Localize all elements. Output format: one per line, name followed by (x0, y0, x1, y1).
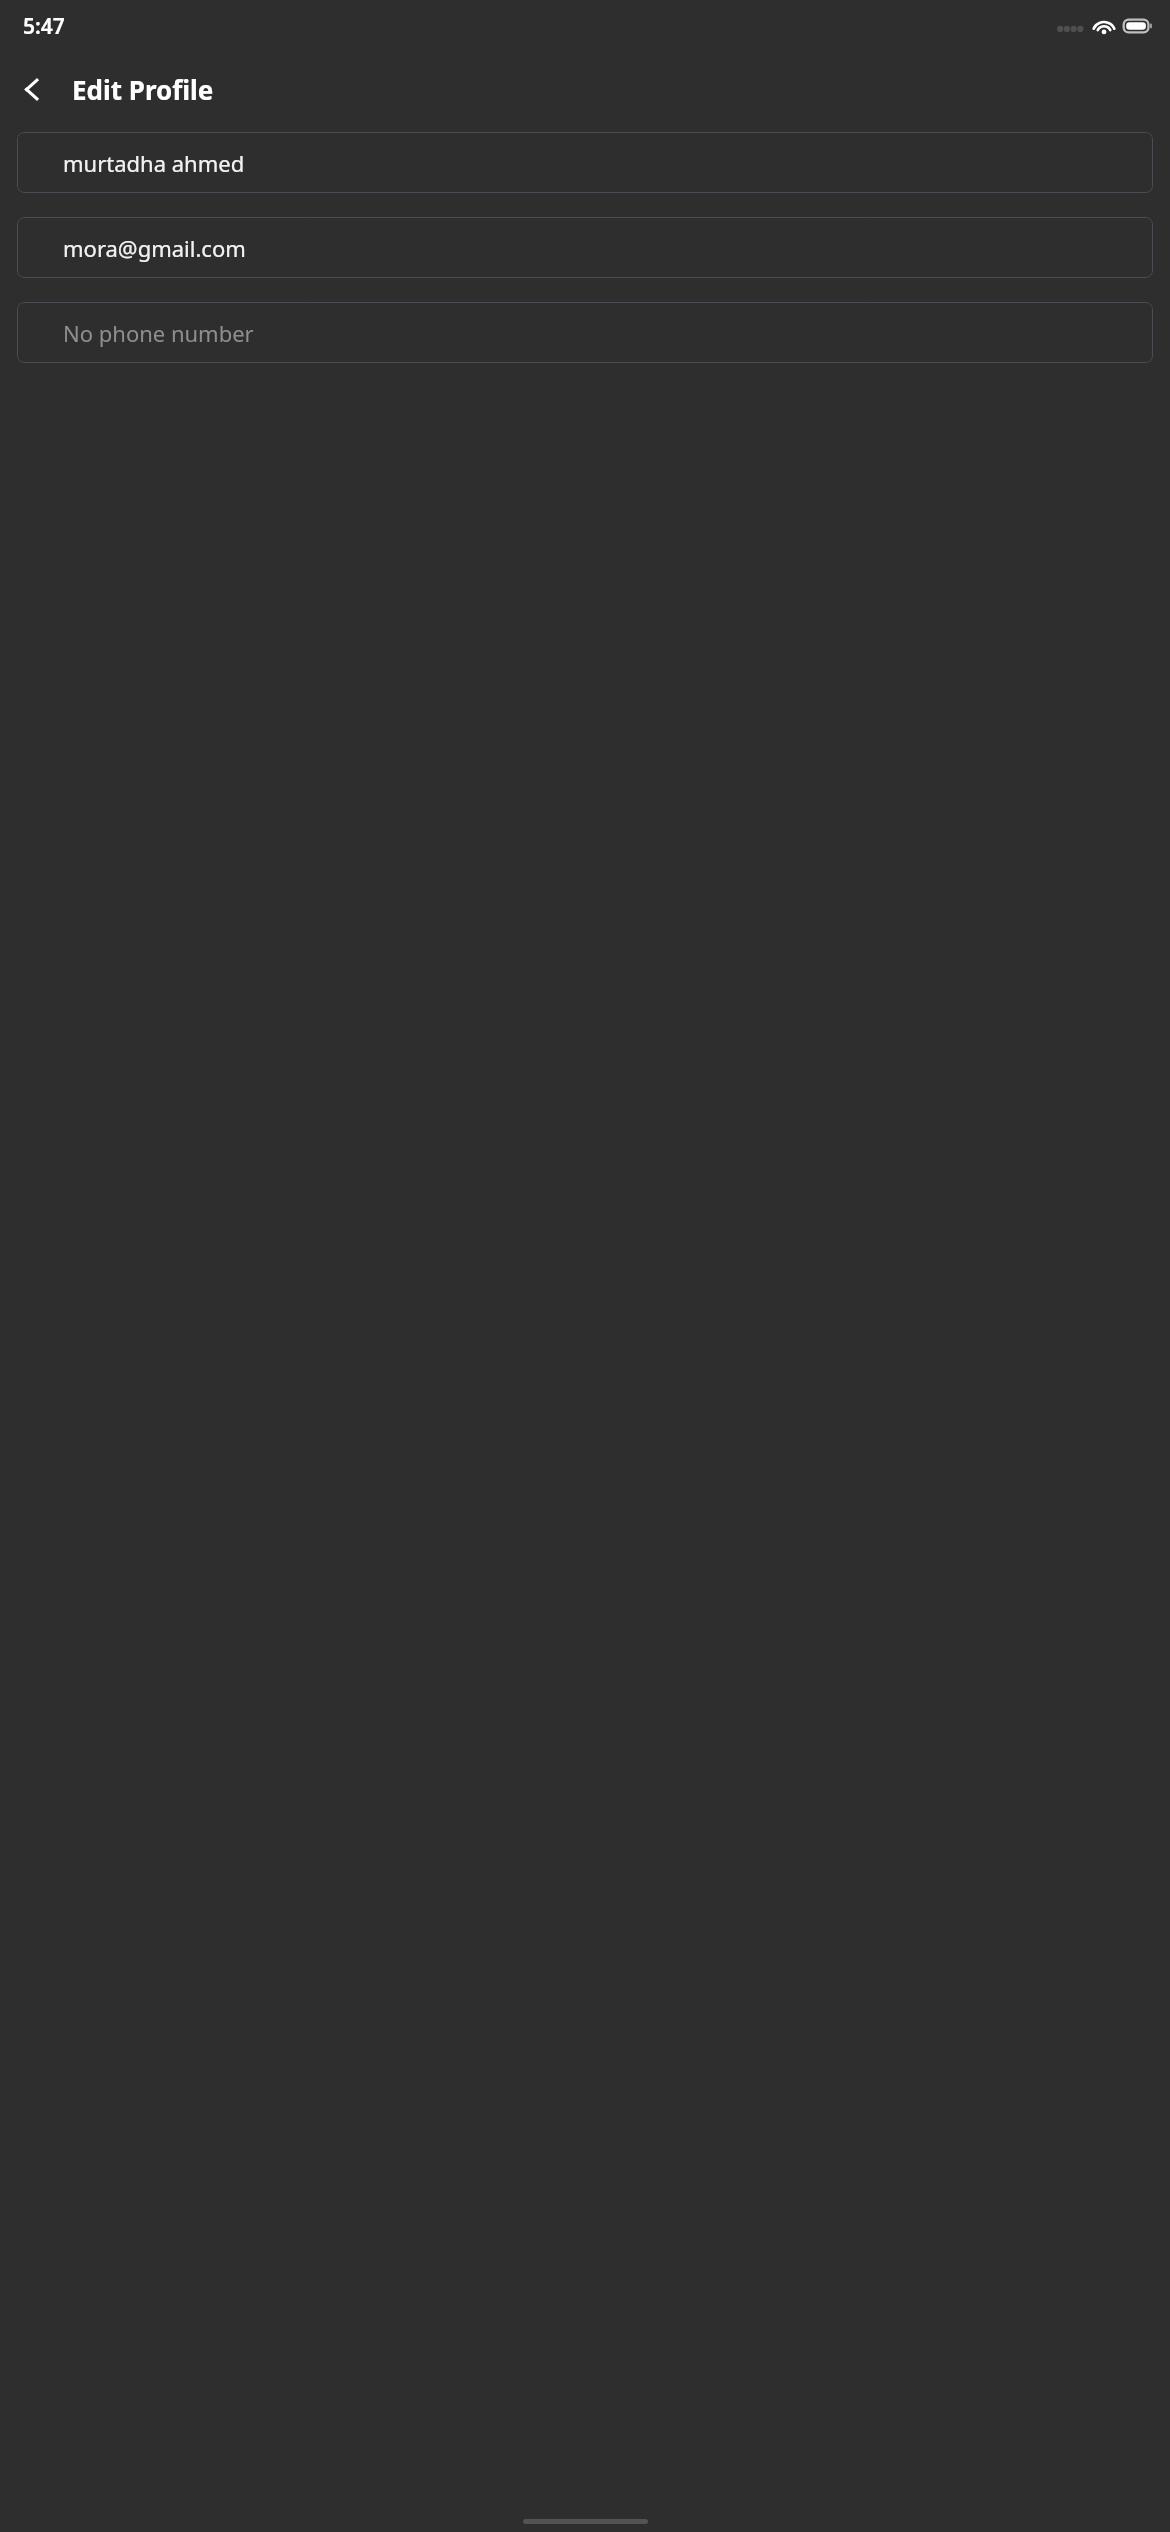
staticText: Edit Profile (72, 72, 214, 107)
staticText: 5:47 (23, 12, 65, 41)
button[interactable]: No phone number (17, 302, 1153, 363)
button[interactable]: Back (8, 66, 54, 112)
staticText: murtadha ahmed (63, 148, 245, 178)
staticText: mora@gmail.com (63, 233, 246, 263)
button[interactable]: mora@gmail.com (17, 217, 1153, 278)
staticText: No phone number (63, 318, 254, 348)
button[interactable]: murtadha ahmed (17, 132, 1153, 193)
